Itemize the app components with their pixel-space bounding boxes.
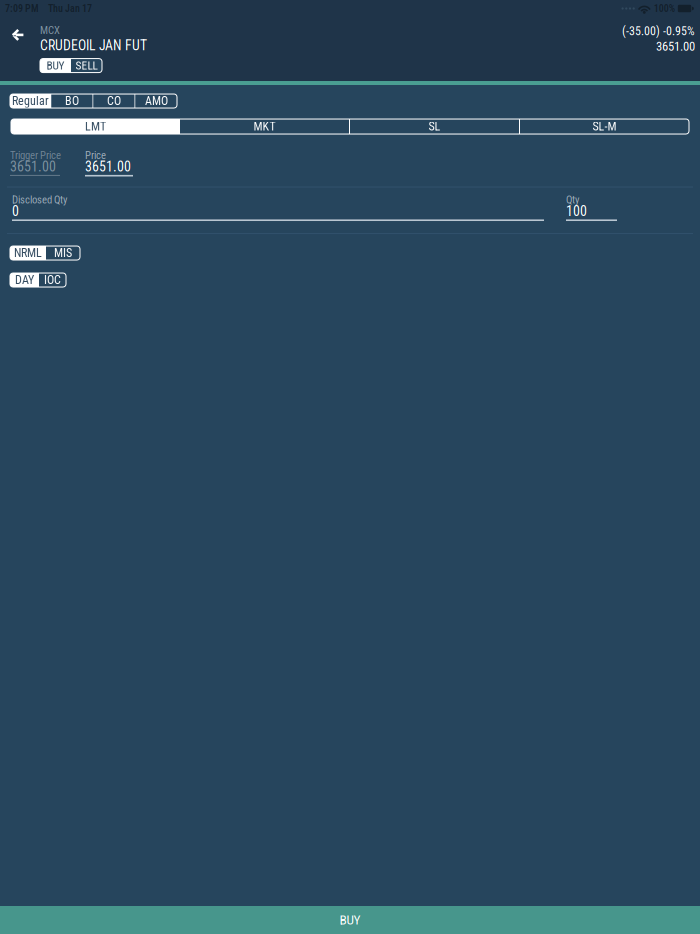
button[interactable]: MIS	[46, 246, 80, 260]
button[interactable]: Qty	[566, 193, 617, 221]
staticText: 0	[12, 203, 19, 219]
staticText: SL	[428, 119, 440, 134]
staticText: 7:09 PM	[5, 3, 39, 14]
button[interactable]: SL	[350, 119, 519, 134]
staticText: 3651.00	[656, 39, 695, 54]
button[interactable]: SELL	[71, 59, 102, 73]
staticText: Price	[85, 149, 106, 161]
staticText: 3651.00	[10, 158, 56, 175]
staticText: BUY	[46, 59, 64, 72]
button[interactable]: SL-M	[520, 119, 689, 134]
staticText: MIS	[54, 246, 72, 260]
staticText: LMT	[85, 119, 106, 134]
staticText: Qty	[566, 193, 579, 206]
button[interactable]: CO	[93, 94, 134, 108]
staticText: AMO	[145, 94, 168, 108]
button[interactable]: BO	[51, 94, 92, 108]
staticText: 100	[566, 203, 587, 219]
button[interactable]: Back	[10, 23, 39, 47]
staticText: Trigger Price	[10, 149, 61, 161]
staticText: IOC	[44, 273, 61, 287]
staticText: Thu Jan 17	[48, 3, 92, 14]
staticText: MKT	[253, 119, 275, 134]
button[interactable]: Trigger Price	[10, 149, 85, 176]
button[interactable]: Regular	[9, 94, 51, 108]
staticText: BUY	[339, 912, 360, 928]
staticText: NRML	[14, 246, 42, 260]
staticText: 100%	[654, 3, 675, 14]
staticText: 3651.00	[85, 158, 131, 175]
button[interactable]: Disclosed Qty	[12, 193, 544, 221]
button[interactable]: BUY	[40, 59, 71, 73]
button[interactable]: BUY	[0, 906, 700, 934]
staticText: Disclosed Qty	[12, 193, 67, 206]
button[interactable]: AMO	[135, 94, 177, 108]
staticText: SELL	[75, 59, 97, 72]
staticText: Regular	[12, 94, 49, 108]
staticText: (-35.00) -0.95%	[622, 24, 695, 38]
staticText: BO	[65, 94, 79, 108]
button[interactable]: Price	[85, 149, 145, 176]
button[interactable]: NRML	[10, 246, 46, 260]
staticText: CO	[107, 94, 121, 108]
staticText: CRUDEOIL JAN FUT	[40, 37, 147, 54]
button[interactable]: DAY	[10, 273, 39, 287]
button[interactable]: IOC	[39, 273, 66, 287]
staticText: DAY	[15, 273, 34, 287]
staticText: SL-M	[592, 119, 616, 134]
button[interactable]: LMT	[11, 119, 180, 134]
button[interactable]: MKT	[180, 119, 349, 134]
staticText: MCX	[40, 24, 60, 36]
